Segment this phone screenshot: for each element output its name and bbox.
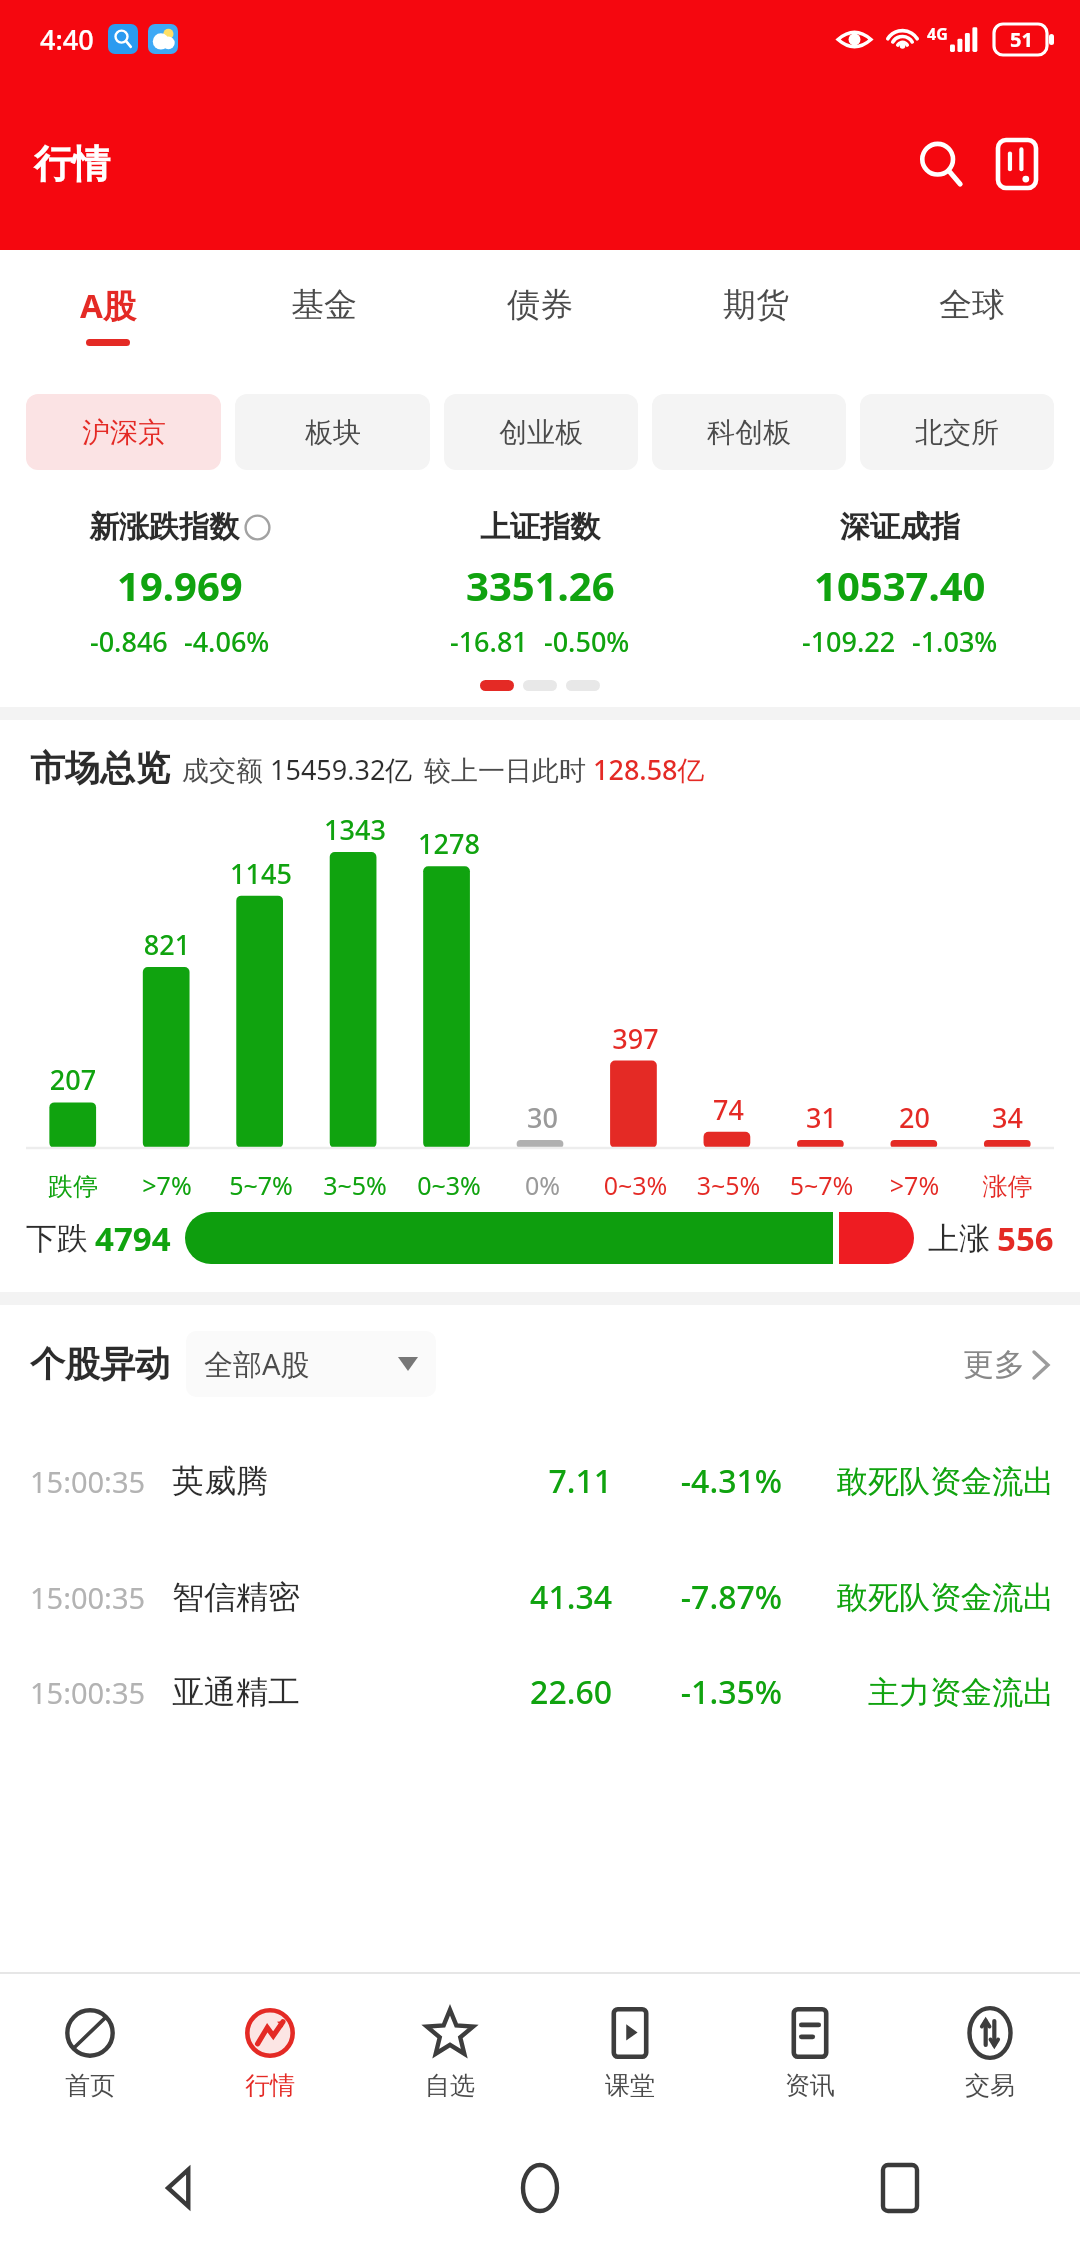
staticText: 个股异动 [30,1342,170,1386]
staticText: 较上一日此时 [424,754,586,788]
staticText: 亚通精工 [172,1672,300,1712]
button[interactable]: 期货 [648,250,864,378]
button[interactable]: 债券 [432,250,648,378]
staticText: 英威腾 [172,1461,268,1501]
button[interactable]: Back [0,2132,360,2244]
staticText: 207 [26,1061,120,1098]
staticText: 主力资金流出 [800,1673,1054,1712]
button[interactable]: 15:00:35 [0,1423,1080,1539]
staticText: 5~7% [775,1168,868,1202]
staticText: 敢死队资金流出 [800,1578,1054,1617]
staticText: 34 [961,1099,1054,1136]
staticText: 板块 [305,415,361,450]
staticText: 全球 [939,284,1005,326]
button[interactable]: A股 [0,250,216,378]
button[interactable]: 15:00:35 [0,1539,1080,1655]
staticText: 智信精密 [172,1577,300,1617]
staticText: 交易 [965,2070,1015,2101]
staticText: 15:00:35 [30,1462,146,1501]
staticText: 19.969 [117,558,243,612]
staticText: 行情 [245,2070,295,2101]
staticText: >7% [120,1168,214,1202]
staticText: 0~3% [589,1168,682,1202]
button[interactable]: 首页 [0,1974,180,2132]
staticText: 下跌 [26,1219,88,1258]
staticText: 市场总览 [30,746,170,790]
button[interactable]: Home [360,2132,720,2244]
button[interactable]: 上证指数 [360,508,720,660]
staticText: -7.87% [632,1575,782,1619]
button[interactable]: 深证成指 [720,508,1080,660]
staticText: 新涨跌指数 [89,508,239,546]
staticText: 期货 [723,284,789,326]
staticText: -4.31% [632,1459,782,1503]
button[interactable]: 15:00:35 [0,1655,1080,1729]
staticText: 20 [868,1099,961,1136]
staticText: 51 [1010,26,1033,53]
staticText: 5~7% [214,1168,308,1202]
button[interactable]: 北交所 [860,394,1054,470]
staticText: 31 [775,1099,868,1136]
staticText: -1.03% [912,623,998,660]
staticText: >7% [868,1168,961,1202]
button[interactable]: Recent apps [720,2132,1080,2244]
staticText: -0.846 [90,623,168,660]
button[interactable]: 新涨跌指数 [0,508,360,660]
button[interactable]: 行情 [180,1974,360,2132]
staticText: 首页 [65,2070,115,2101]
button[interactable]: 自选 [360,1974,540,2132]
staticText: 74 [682,1091,775,1128]
staticText: 成交额 [182,754,263,788]
button[interactable]: 全部A股 [186,1331,436,1397]
staticText: 15:00:35 [30,1578,146,1617]
staticText: 3351.26 [466,558,615,612]
button[interactable]: Trading terminal [984,131,1050,197]
staticText: 跌停 [26,1171,120,1202]
staticText: 行情 [34,140,110,188]
button[interactable]: 板块 [235,394,430,470]
button[interactable]: 全球 [864,250,1080,378]
staticText: -4.06% [184,623,270,660]
button[interactable]: Search [908,131,974,197]
staticText: 债券 [507,284,573,326]
staticText: 深证成指 [840,508,960,546]
staticText: 1278 [402,825,496,862]
staticText: -16.81 [450,623,528,660]
button[interactable]: 更多 [963,1345,1050,1384]
staticText: 4:40 [40,21,94,58]
button[interactable]: 资讯 [720,1974,900,2132]
staticText: 15:00:35 [30,1673,146,1712]
staticText: 0% [496,1168,589,1202]
staticText: 4G [927,23,948,45]
staticText: 上涨 [928,1219,990,1258]
staticText: 全部A股 [204,1344,310,1384]
staticText: 北交所 [915,415,999,450]
staticText: 课堂 [605,2070,655,2101]
staticText: 沪深京 [82,415,166,450]
staticText: 敢死队资金流出 [800,1462,1054,1501]
button[interactable]: 科创板 [652,394,846,470]
staticText: 自选 [425,2070,475,2101]
staticText: 基金 [291,284,357,326]
staticText: 7.11 [492,1459,612,1503]
staticText: 821 [120,926,214,963]
button[interactable]: 课堂 [540,1974,720,2132]
staticText: 15459.32亿 [270,751,413,788]
staticText: 10537.40 [814,558,986,612]
button[interactable]: 创业板 [444,394,638,470]
button[interactable]: 沪深京 [26,394,221,470]
button[interactable]: 基金 [216,250,432,378]
staticText: 0~3% [402,1168,496,1202]
staticText: 资讯 [785,2070,835,2101]
staticText: 128.58亿 [593,751,705,788]
staticText: 397 [589,1020,682,1057]
staticText: 1145 [214,855,308,892]
staticText: 创业板 [499,415,583,450]
staticText: 1343 [308,811,402,848]
staticText: 556 [997,1216,1054,1261]
staticText: -109.22 [802,623,896,660]
staticText: -1.35% [632,1670,782,1714]
button[interactable]: 交易 [900,1974,1080,2132]
staticText: 更多 [963,1345,1025,1384]
staticText: A股 [80,283,136,328]
